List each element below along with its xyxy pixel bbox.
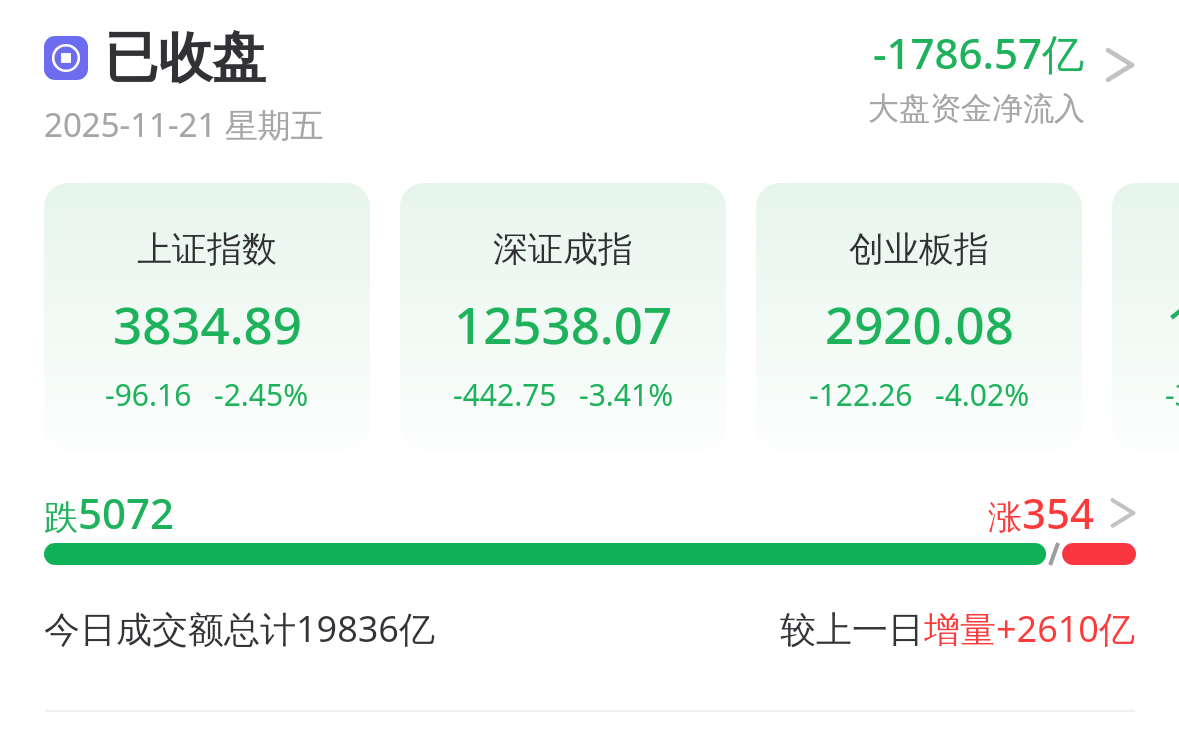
button[interactable]: 涨354 — [988, 484, 1143, 541]
button[interactable]: -1786.57亿 — [868, 24, 1143, 128]
staticText: 大盘资金净流入 — [868, 89, 1085, 128]
other: More capital flow — [1097, 42, 1143, 88]
button[interactable]: 跌5072 — [44, 484, 175, 541]
staticText: -300.00 — [1165, 374, 1179, 415]
staticText: 2025-11-21 星期五 — [44, 102, 324, 147]
other: Advancers and decliners — [1103, 493, 1143, 533]
staticText: 深证成指 — [493, 227, 633, 271]
button[interactable]: 深证成指 — [400, 183, 726, 450]
staticText: 创业板指 — [849, 227, 989, 271]
staticText: 较上一日增量+2610亿 — [780, 604, 1135, 653]
staticText: 12538.07 — [454, 289, 673, 358]
button[interactable]: 中小综指 — [1112, 183, 1179, 450]
staticText: 上证指数 — [137, 227, 277, 271]
staticText: 2920.08 — [825, 289, 1014, 358]
staticText: -2.45% — [214, 374, 309, 415]
button[interactable]: 创业板指 — [756, 183, 1082, 450]
staticText: -96.16 — [105, 374, 192, 415]
staticText: -1786.57亿 — [873, 24, 1085, 81]
staticText: -442.75 — [453, 374, 557, 415]
staticText: -122.26 — [809, 374, 913, 415]
button[interactable] — [44, 543, 1136, 565]
staticText: 11000.00 — [1166, 289, 1179, 358]
button[interactable]: 上证指数 — [44, 183, 370, 450]
staticText: -4.02% — [935, 374, 1030, 415]
staticText: 3834.89 — [113, 289, 302, 358]
staticText: -3.41% — [579, 374, 674, 415]
staticText: 已收盘 — [104, 24, 266, 92]
staticText: 今日成交额总计19836亿 — [44, 604, 435, 653]
other: Market closed — [44, 36, 88, 80]
staticText: 涨354 — [988, 484, 1095, 541]
